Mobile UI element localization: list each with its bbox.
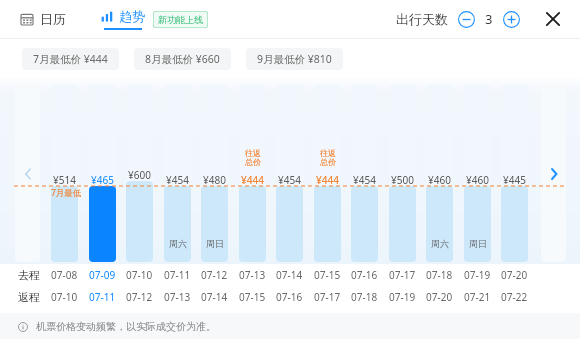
button[interactable]: 新功能上线 <box>153 11 208 28</box>
staticText: 07-18 <box>351 290 378 304</box>
staticText: ¥480 <box>203 173 226 187</box>
staticText: 周六 <box>169 238 187 249</box>
staticText: ¥500 <box>391 173 414 187</box>
button[interactable]: 关闭 <box>542 8 564 30</box>
staticText: ¥444 <box>241 173 264 187</box>
button[interactable] <box>239 85 266 262</box>
staticText: ¥454 <box>278 173 301 187</box>
button[interactable]: 8月最低价 ¥660 <box>134 48 231 70</box>
button[interactable] <box>389 85 416 262</box>
staticText: 出行天数 <box>396 11 448 27</box>
staticText: 07-13 <box>239 268 266 282</box>
staticText: 周日 <box>469 238 487 249</box>
staticText: 07-09 <box>89 268 116 282</box>
staticText: 新功能上线 <box>158 14 203 25</box>
staticText: 07-20 <box>426 290 453 304</box>
staticText: 07-11 <box>164 268 191 282</box>
staticText: 07-21 <box>464 290 491 304</box>
staticText: ¥460 <box>428 173 451 187</box>
staticText: 07-18 <box>426 268 453 282</box>
staticText: 去程 <box>18 268 40 282</box>
staticText: 07-16 <box>276 290 303 304</box>
staticText: 07-12 <box>126 290 153 304</box>
button[interactable] <box>464 85 491 262</box>
staticText: ¥444 <box>316 173 339 187</box>
staticText: 07-14 <box>276 268 303 282</box>
staticText: ¥514 <box>53 173 76 187</box>
staticText: 07-16 <box>351 268 378 282</box>
staticText: ¥600 <box>128 168 151 182</box>
staticText: 07-20 <box>501 268 528 282</box>
staticText: 07-11 <box>89 290 116 304</box>
staticText: 07-08 <box>51 268 78 282</box>
button[interactable]: 下一周 <box>541 85 566 262</box>
staticText: ¥460 <box>466 173 489 187</box>
staticText: 07-10 <box>51 290 78 304</box>
staticText: 9月最低价 ¥810 <box>257 52 332 66</box>
staticText: 07-12 <box>201 268 228 282</box>
button[interactable] <box>314 85 341 262</box>
staticText: 趋势 <box>119 8 145 24</box>
staticText: 07-19 <box>464 268 491 282</box>
staticText: ¥445 <box>503 173 526 187</box>
staticText: 机票价格变动频繁，以实际成交价为准。 <box>36 320 216 333</box>
button[interactable] <box>501 85 528 262</box>
staticText: 07-15 <box>239 290 266 304</box>
staticText: 8月最低价 ¥660 <box>145 52 220 66</box>
button[interactable] <box>351 85 378 262</box>
staticText: 日历 <box>40 11 66 27</box>
staticText: 周六 <box>431 238 449 249</box>
button[interactable] <box>89 85 116 262</box>
button[interactable]: 9月最低价 ¥810 <box>246 48 343 70</box>
staticText: 往返 总价 <box>320 148 336 167</box>
staticText: 07-17 <box>389 268 416 282</box>
button[interactable]: 日历 <box>18 8 69 30</box>
button[interactable]: 上一周 <box>15 85 40 262</box>
staticText: 07-13 <box>164 290 191 304</box>
staticText: ¥454 <box>353 173 376 187</box>
button[interactable]: 趋势 <box>101 8 145 30</box>
staticText: 往返 总价 <box>245 148 261 167</box>
staticText: 3 <box>485 10 493 28</box>
button[interactable] <box>51 85 78 262</box>
button[interactable] <box>276 85 303 262</box>
staticText: 07-15 <box>314 268 341 282</box>
button[interactable] <box>201 85 228 262</box>
staticText: 周日 <box>206 238 224 249</box>
staticText: 返程 <box>18 290 40 304</box>
staticText: 07-19 <box>389 290 416 304</box>
button[interactable] <box>126 85 153 262</box>
staticText: 07-10 <box>126 268 153 282</box>
button[interactable]: 7月最低价 ¥444 <box>22 48 119 70</box>
staticText: ¥454 <box>166 173 189 187</box>
staticText: 07-22 <box>501 290 528 304</box>
staticText: 07-17 <box>314 290 341 304</box>
staticText: 07-14 <box>201 290 228 304</box>
staticText: ¥465 <box>91 173 114 187</box>
button[interactable] <box>164 85 191 262</box>
staticText: 7月最低价 ¥444 <box>33 52 108 66</box>
button[interactable] <box>426 85 453 262</box>
staticText: 7月最低 <box>51 187 82 199</box>
button[interactable]: 增加天数 <box>503 11 520 28</box>
button[interactable]: 减少天数 <box>458 11 475 28</box>
